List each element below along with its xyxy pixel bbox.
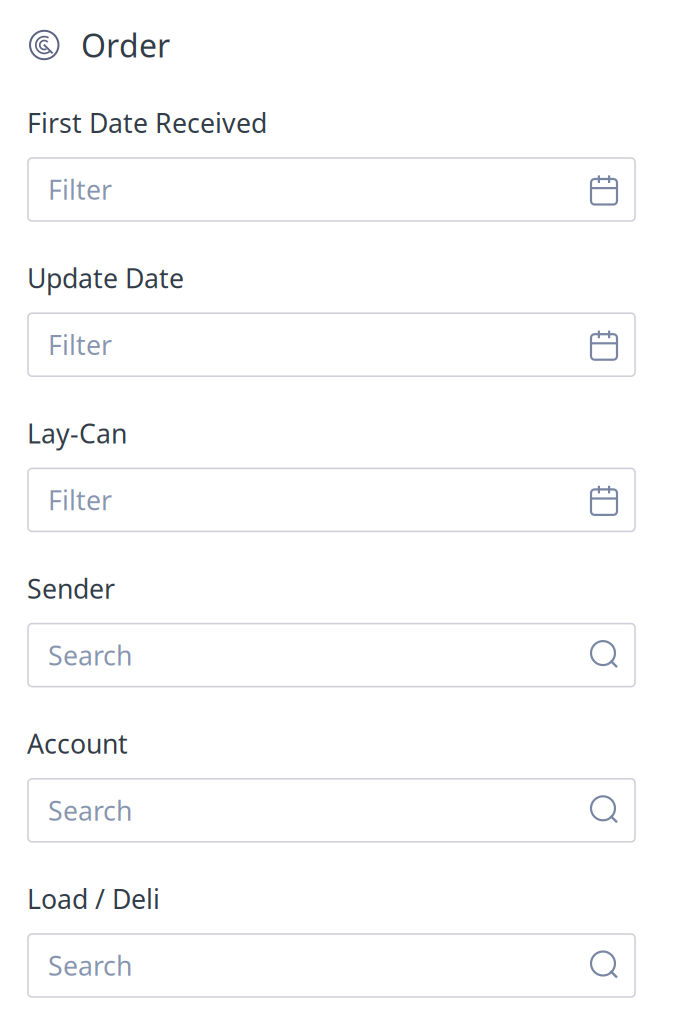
button[interactable]: Lay-Can, Filter <box>28 468 635 531</box>
staticText: Search <box>48 793 132 828</box>
staticText: Update Date <box>27 260 184 296</box>
staticText: Order <box>81 24 170 66</box>
staticText: Load / Deli <box>27 881 160 916</box>
staticText: Filter <box>48 172 112 207</box>
button[interactable]: Order <box>29 24 169 66</box>
staticText: Lay-Can <box>27 415 127 451</box>
staticText: Filter <box>48 327 112 362</box>
button[interactable]: Load / Deli, Search <box>28 934 635 997</box>
staticText: Sender <box>27 571 115 606</box>
button[interactable]: Account, Search <box>28 779 635 842</box>
button[interactable]: Sender, Search <box>28 624 635 687</box>
button[interactable]: First Date Received, Filter <box>28 158 635 221</box>
staticText: First Date Received <box>27 105 267 140</box>
button[interactable]: Update Date, Filter <box>28 313 635 376</box>
staticText: Account <box>27 726 128 761</box>
staticText: Filter <box>48 482 112 518</box>
staticText: Search <box>48 637 132 673</box>
staticText: Search <box>48 948 132 983</box>
